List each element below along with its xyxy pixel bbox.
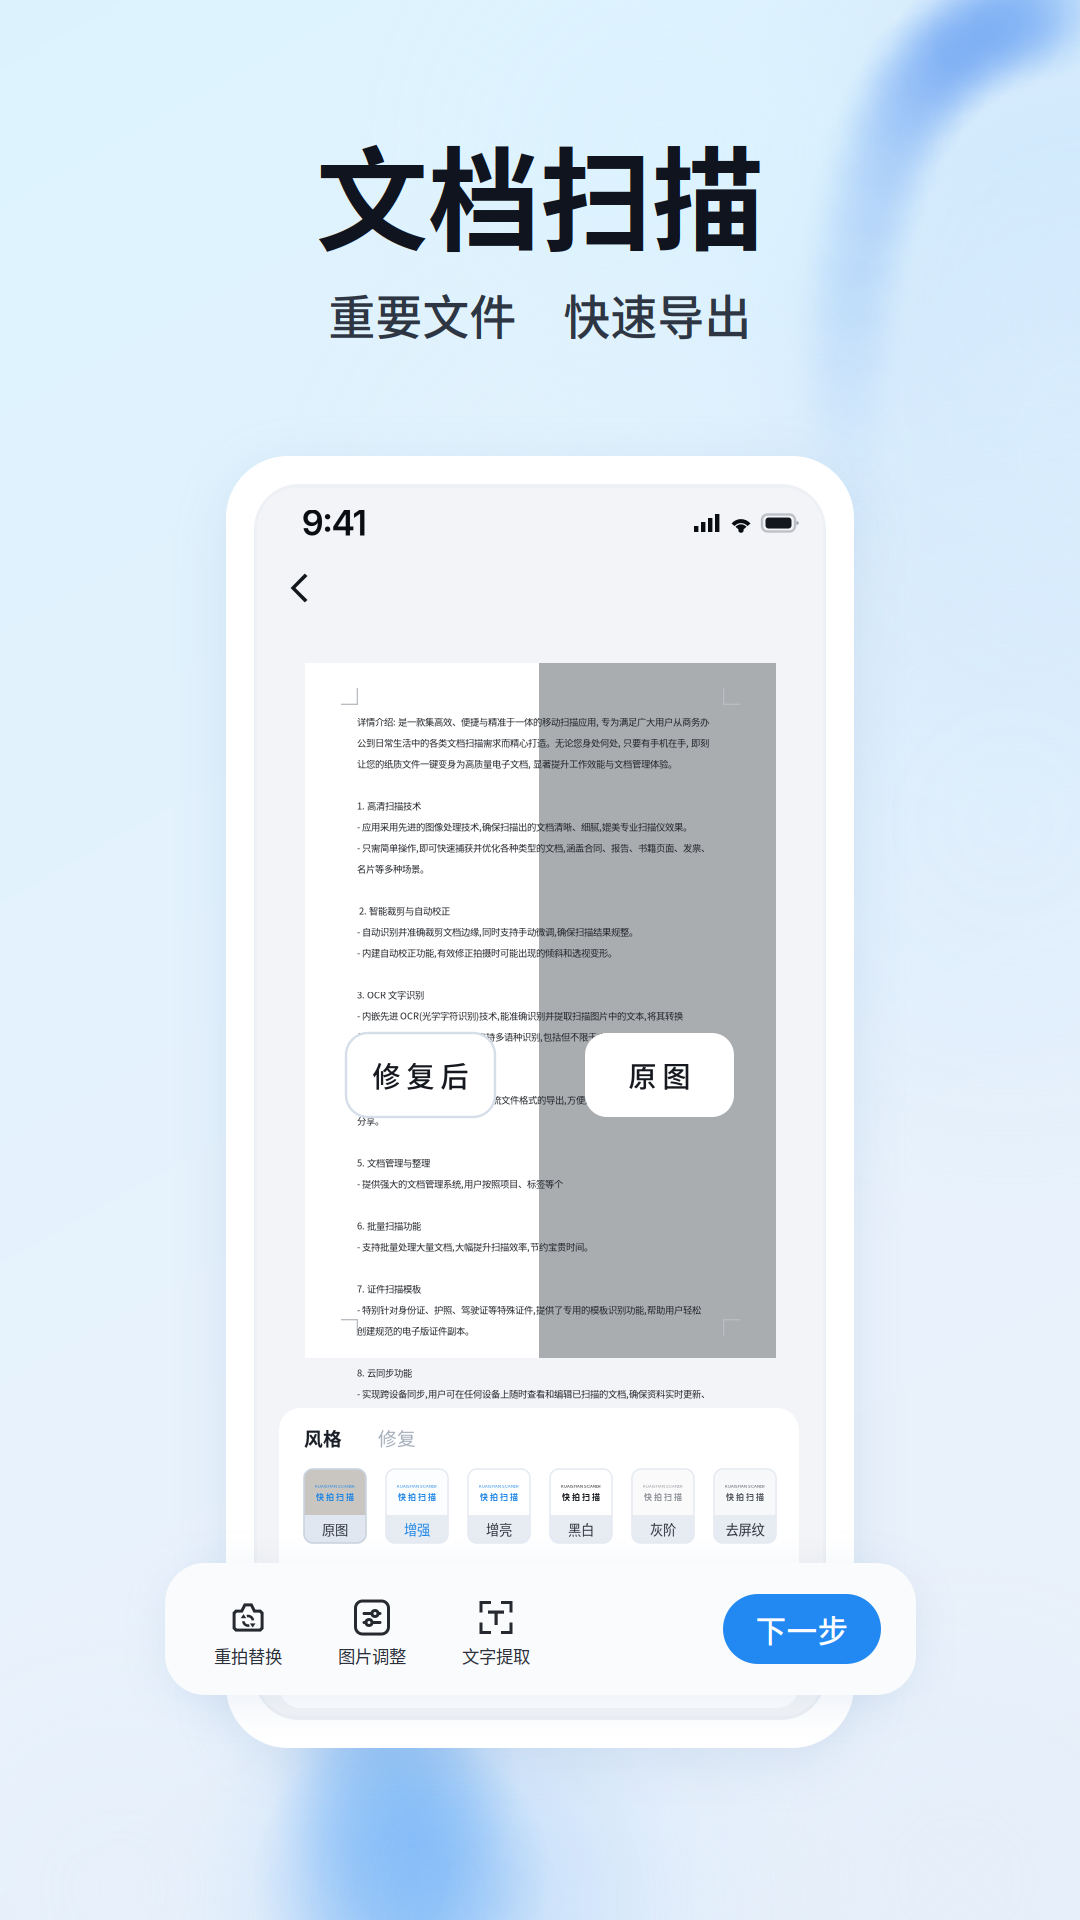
staticText: - 应用采用先进的图像处理技术,确保扫描出的文档清晰、细腻,媲美专业扫描仪效果。 bbox=[357, 820, 692, 833]
button[interactable]: Back bbox=[279, 561, 323, 616]
button[interactable]: KUAISHAN SCANER bbox=[550, 1469, 612, 1543]
staticText: 文字提取 bbox=[462, 1643, 530, 1668]
staticText: 公到日常生活中的各类文档扫描需求而精心打造。无论您身处何处, 只要有手机在手, … bbox=[357, 736, 709, 749]
button[interactable]: 下一步 bbox=[723, 1594, 881, 1664]
staticText: 4. 多格式导出与分享 bbox=[357, 1072, 439, 1085]
staticText: KUAISHAN SCANER bbox=[725, 1484, 765, 1489]
staticText: 快 拍 扫 描 bbox=[726, 1491, 764, 1502]
staticText: 风格 bbox=[304, 1424, 342, 1451]
button[interactable]: KUAISHAN SCANER bbox=[304, 1469, 366, 1543]
button[interactable]: 修 复 后 bbox=[346, 1033, 495, 1117]
button[interactable]: KUAISHAN SCANER bbox=[632, 1469, 694, 1543]
staticText: 3. OCR 文字识别 bbox=[357, 988, 424, 1001]
button[interactable]: KUAISHAN SCANER bbox=[468, 1469, 530, 1543]
staticText: 快 拍 扫 描 bbox=[562, 1491, 600, 1502]
staticText: 重要文件 快速导出 bbox=[328, 280, 751, 348]
staticText: 灰阶 bbox=[650, 1519, 676, 1539]
staticText: 图片调整 bbox=[338, 1643, 406, 1668]
staticText: KUAISHAN SCANER bbox=[643, 1484, 683, 1489]
button[interactable]: 文字提取 bbox=[434, 1593, 558, 1673]
button[interactable]: 风格 bbox=[304, 1424, 342, 1451]
staticText: - 自动识别并准确裁剪文档边缘,同时支持手动微调,确保扫描结果规整。 bbox=[357, 925, 638, 938]
staticText: 为可编辑和检索的文本格式,并支持多语种识别,包括但不限于中文、英文等。 bbox=[357, 1030, 660, 1043]
staticText: - 内建自动校正功能,有效修正拍摄时可能出现的倾斜和透视变形。 bbox=[357, 946, 617, 959]
staticText: KUAISHAN SCANER bbox=[561, 1484, 601, 1489]
staticText: - 支持批量处理大量文档,大幅提升扫描效率,节约宝贵时间。 bbox=[357, 1240, 593, 1253]
staticText: 8. 云同步功能 bbox=[357, 1366, 412, 1379]
staticText: 去屏纹 bbox=[725, 1519, 764, 1539]
staticText: 快 拍 扫 描 bbox=[398, 1491, 436, 1502]
staticText: 创建规范的电子版证件副本。 bbox=[357, 1324, 474, 1337]
staticText: 下一步 bbox=[755, 1607, 848, 1651]
staticText: 增强 bbox=[404, 1519, 430, 1539]
staticText: 名片等多种场景。 bbox=[357, 862, 429, 875]
staticText: 快 拍 扫 描 bbox=[316, 1491, 354, 1502]
button[interactable]: 图片调整 bbox=[310, 1593, 434, 1673]
staticText: - 特别针对身份证、护照、驾驶证等特殊证件,提供了专用的模板识别功能,帮助用户轻… bbox=[357, 1303, 701, 1316]
button[interactable]: KUAISHAN SCANER bbox=[386, 1469, 448, 1543]
staticText: 修 复 后 bbox=[372, 1055, 468, 1095]
staticText: 原 图 bbox=[628, 1055, 690, 1095]
staticText: 快 拍 扫 描 bbox=[644, 1491, 682, 1502]
staticText: - 提供强大的文档管理系统,用户按照项目、标签等个 bbox=[357, 1177, 563, 1190]
staticText: 9:41 bbox=[302, 502, 367, 544]
staticText: - 实现跨设备同步,用户可在任何设备上随时查看和编辑已扫描的文档,确保资料实时更… bbox=[357, 1387, 710, 1400]
staticText: 1. 高清扫描技术 bbox=[357, 799, 421, 812]
staticText: 快 拍 扫 描 bbox=[480, 1491, 518, 1502]
staticText: 原图 bbox=[322, 1519, 348, 1539]
staticText: 文档扫描 bbox=[316, 112, 764, 274]
staticText: 增亮 bbox=[486, 1519, 512, 1539]
staticText: 让您的纸质文件一键变身为高质量电子文档, 显著提升工作效能与文档管理体验。 bbox=[357, 757, 677, 770]
staticText: 7. 证件扫描模板 bbox=[357, 1282, 421, 1295]
staticText: 5. 文档管理与整理 bbox=[357, 1156, 430, 1169]
staticText: KUAISHAN SCANER bbox=[315, 1484, 355, 1489]
button[interactable]: 重拍替换 bbox=[186, 1593, 310, 1673]
button[interactable]: 修复 bbox=[378, 1424, 416, 1451]
staticText: - 内嵌先进 OCR(光学字符识别)技术,能准确识别并提取扫描图片中的文本,将其… bbox=[357, 1009, 683, 1022]
staticText: - 支持PDF、JPEG、PNG等多种主流文件格式的导出,方便用户根据实际需求灵… bbox=[357, 1093, 702, 1106]
button[interactable]: KUAISHAN SCANER bbox=[714, 1469, 776, 1543]
staticText: - 只需简单操作,即可快速捕获并优化各种类型的文档,涵盖合同、报告、书籍页面、发… bbox=[357, 841, 710, 854]
staticText: 6. 批量扫描功能 bbox=[357, 1219, 421, 1232]
staticText: 详情介绍: 是一款集高效、便捷与精准于一体的移动扫描应用, 专为满足广大用户从商… bbox=[357, 715, 709, 728]
staticText: 修复 bbox=[378, 1424, 416, 1451]
button[interactable]: 原 图 bbox=[585, 1033, 734, 1117]
staticText: KUAISHAN SCANER bbox=[479, 1484, 519, 1489]
staticText: KUAISHAN SCANER bbox=[397, 1484, 437, 1489]
staticText: 黑白 bbox=[568, 1519, 594, 1539]
staticText: 2. 智能裁剪与自动校正 bbox=[357, 904, 450, 917]
staticText: 重拍替换 bbox=[214, 1643, 282, 1668]
staticText: 分享。 bbox=[357, 1114, 384, 1127]
